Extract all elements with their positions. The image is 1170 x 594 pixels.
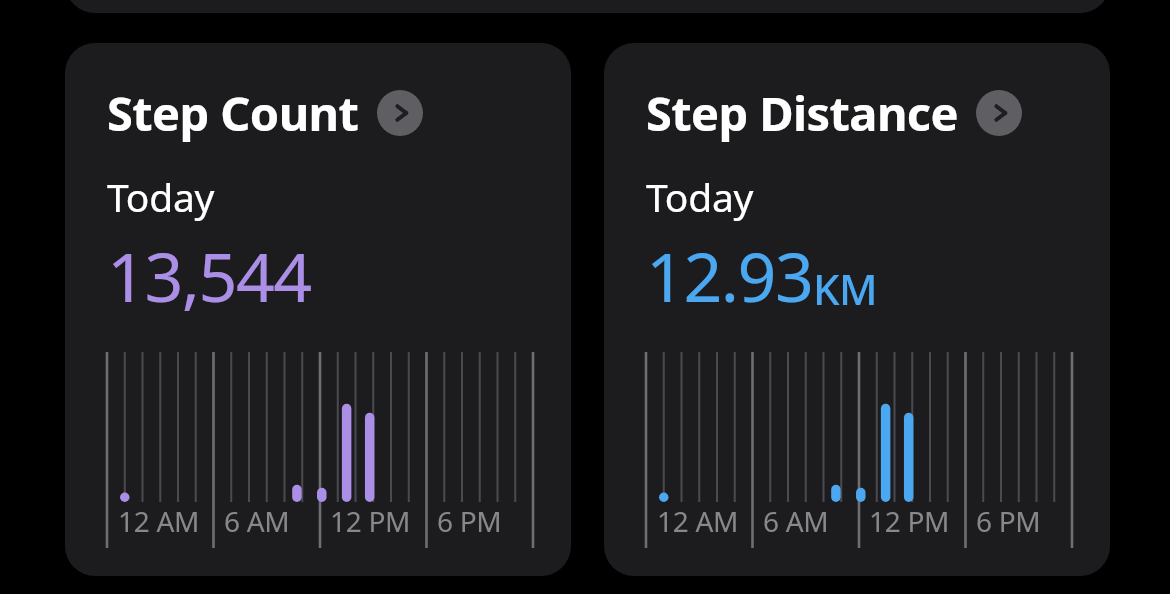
staticText: 12.93: [646, 229, 813, 322]
button[interactable]: [65, 0, 1110, 13]
button[interactable]: Step Distance: [604, 43, 1110, 576]
staticText: 12 PM: [869, 502, 950, 540]
staticText: 6 PM: [976, 502, 1041, 540]
staticText: KM: [813, 260, 878, 317]
staticText: 12 AM: [118, 502, 200, 540]
button[interactable]: Open Step Count details: [377, 90, 423, 136]
staticText: 6 PM: [437, 502, 502, 540]
staticText: 6 AM: [763, 502, 829, 540]
staticText: 12 AM: [657, 502, 739, 540]
button[interactable]: Step Count: [65, 43, 571, 576]
staticText: Step Distance: [646, 81, 958, 145]
staticText: 12 PM: [330, 502, 411, 540]
staticText: 6 AM: [224, 502, 290, 540]
staticText: Today: [646, 170, 754, 223]
button[interactable]: Open Step Distance details: [976, 90, 1022, 136]
staticText: Step Count: [107, 81, 359, 145]
staticText: 13,544: [107, 229, 311, 322]
staticText: Today: [107, 170, 215, 223]
